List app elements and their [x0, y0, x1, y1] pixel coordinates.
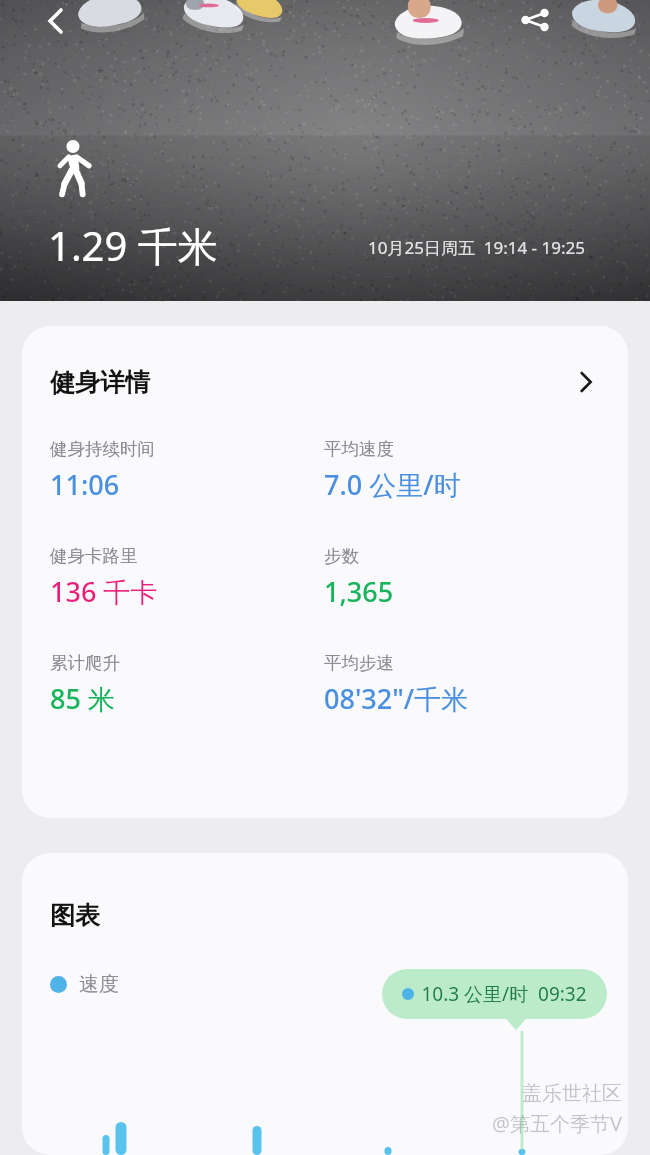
staticText: 1.29 千米: [48, 218, 218, 273]
button[interactable]: 10.3 公里/时 09:32: [382, 969, 607, 1019]
staticText: 10.3 公里/时 09:32: [421, 981, 587, 1007]
staticText: 10月25日周五 19:14 - 19:25: [368, 236, 585, 259]
staticText: 健身持续时间: [50, 438, 155, 460]
staticText: 08'32"/千米: [324, 680, 469, 717]
staticText: 健身详情: [50, 367, 150, 398]
button[interactable]: 健身详情: [22, 326, 628, 438]
staticText: 图表: [50, 900, 100, 931]
button[interactable]: 速度: [50, 972, 119, 997]
staticText: 11:06: [50, 466, 120, 503]
staticText: 盖乐世社区: [522, 1081, 622, 1106]
staticText: @第五个季节V: [492, 1110, 622, 1137]
staticText: 136 千卡: [50, 573, 158, 610]
staticText: 85 米: [50, 680, 115, 717]
staticText: 7.0 公里/时: [324, 466, 461, 503]
staticText: 速度: [79, 972, 119, 997]
staticText: 累计爬升: [50, 652, 120, 674]
button[interactable]: Share: [506, 0, 564, 49]
staticText: 1,365: [324, 573, 394, 610]
staticText: 平均步速: [324, 652, 394, 674]
staticText: 步数: [324, 545, 359, 567]
staticText: 健身卡路里: [50, 545, 138, 567]
staticText: 平均速度: [324, 438, 394, 460]
button[interactable]: Back: [26, 0, 84, 50]
